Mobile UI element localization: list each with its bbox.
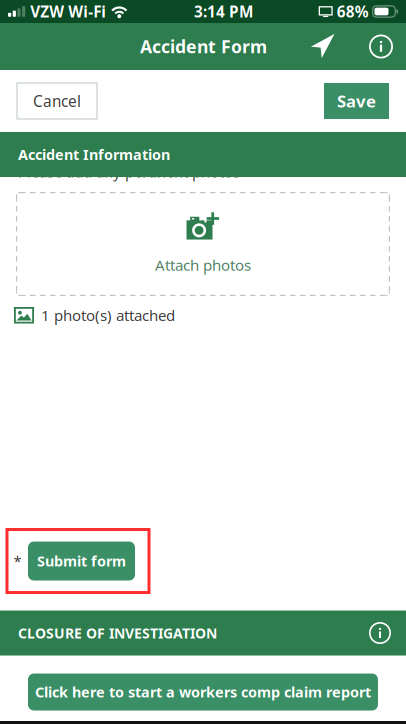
button[interactable]: Information	[359, 23, 403, 70]
staticText: Click here to start a workers comp claim…	[35, 682, 371, 702]
staticText: CLOSURE OF INVESTIGATION	[18, 623, 217, 643]
button[interactable]: Submit form	[28, 541, 135, 580]
button[interactable]: Save	[324, 83, 389, 119]
staticText: VZW Wi-Fi	[30, 1, 106, 22]
staticText: 3:14 PM	[194, 1, 253, 22]
staticText: 1 photo(s) attached	[41, 305, 175, 325]
staticText: 68%	[337, 1, 369, 22]
staticText: *	[13, 551, 21, 571]
staticText: Save	[337, 90, 376, 112]
button[interactable]: Current location	[287, 23, 359, 70]
button[interactable]: Information	[362, 610, 398, 655]
staticText: Accident Information	[18, 145, 170, 164]
staticText: Accident Form	[140, 34, 267, 58]
staticText: Attach photos	[155, 255, 251, 275]
staticText: Cancel	[33, 91, 81, 111]
staticText: Submit form	[37, 551, 126, 571]
button[interactable]: Cancel	[17, 83, 97, 119]
button[interactable]: Click here to start a workers comp claim…	[28, 673, 378, 710]
staticText: Please add any pertinent photos	[18, 161, 240, 182]
button[interactable]: Attach photos	[16, 192, 390, 296]
